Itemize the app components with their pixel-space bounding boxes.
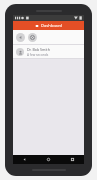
button[interactable]: Back [13,155,36,164]
button[interactable]: Dr. Bob Smith [13,45,84,58]
button[interactable]: Close [28,33,37,42]
staticText: Dashboard [41,23,62,28]
staticText: Dr. Bob Smith [27,47,50,52]
button[interactable]: Recent apps [60,155,84,164]
button[interactable]: Back [16,33,25,42]
button[interactable]: Home [36,155,60,164]
staticText: A few seconds [27,53,49,57]
